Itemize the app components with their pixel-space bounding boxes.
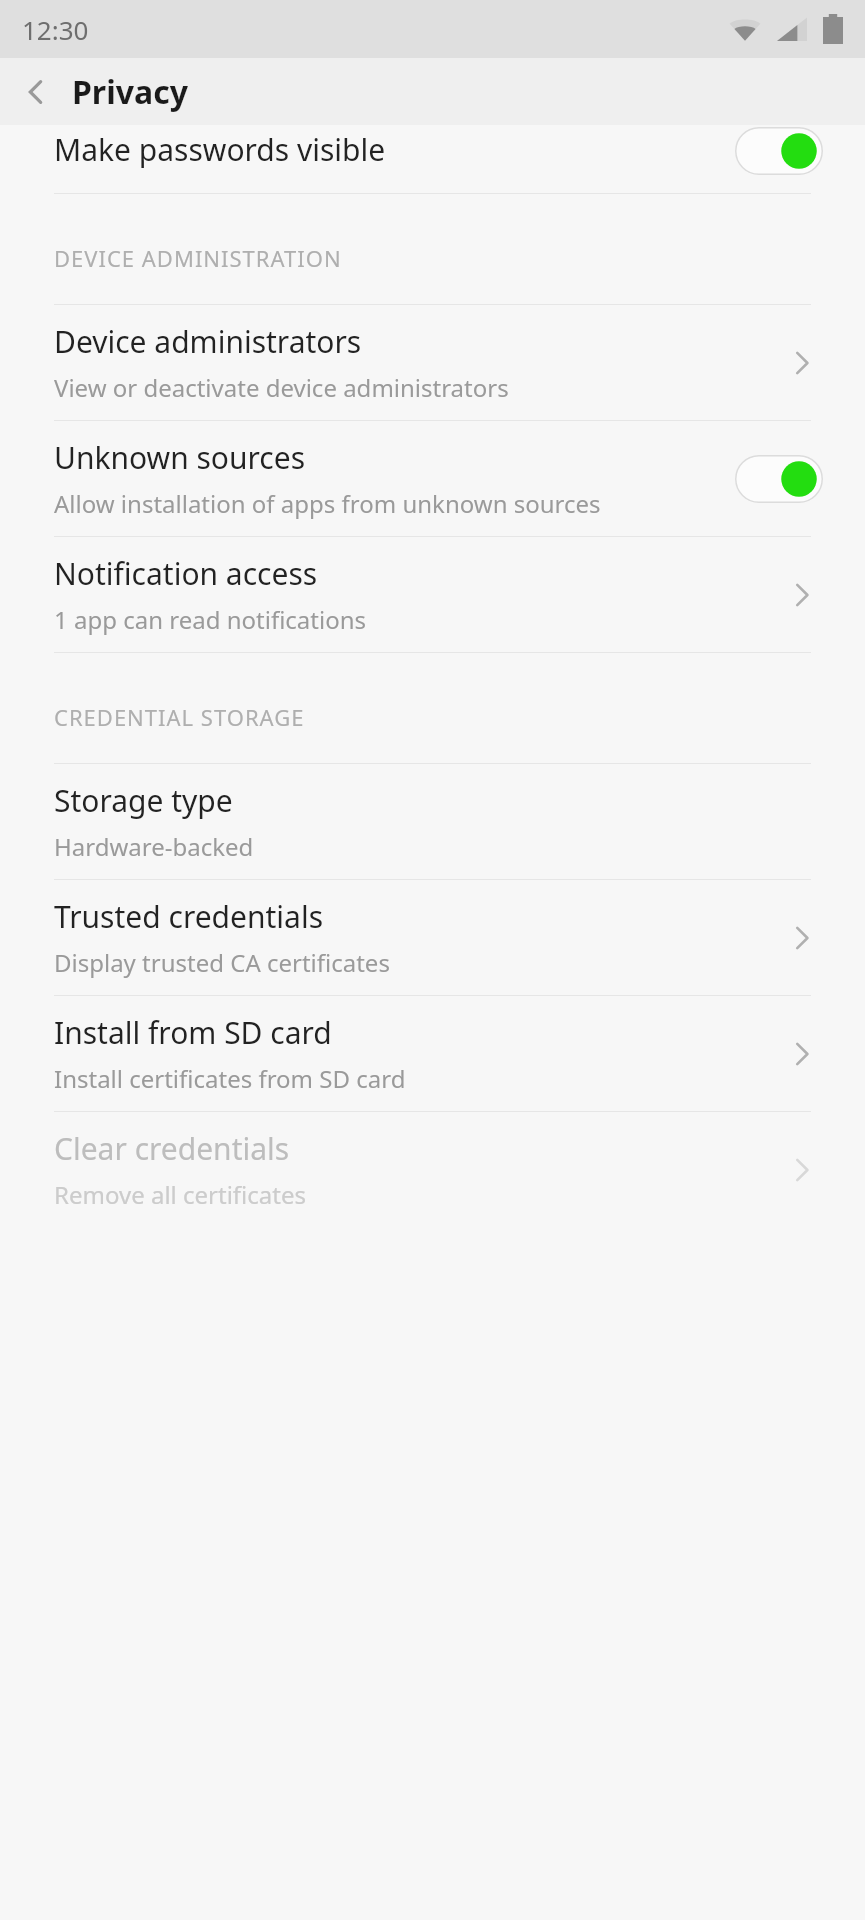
button[interactable]: Notification access <box>0 537 865 652</box>
staticText: Display trusted CA certificates <box>54 946 390 979</box>
button[interactable]: Back <box>0 58 72 125</box>
staticText: 1 app can read notifications <box>54 603 367 636</box>
button[interactable]: Device administrators <box>0 305 865 420</box>
staticText: Privacy <box>72 70 188 114</box>
other: Clear credentials <box>769 1137 835 1203</box>
other: Notification access <box>769 562 835 628</box>
button[interactable]: Storage type <box>0 764 865 879</box>
button[interactable]: Install from SD card <box>0 996 865 1111</box>
button[interactable]: Clear credentials <box>0 1112 865 1227</box>
staticText: Notification access <box>54 553 318 594</box>
staticText: CREDENTIAL STORAGE <box>54 702 305 732</box>
staticText: Unknown sources <box>54 437 306 478</box>
staticText: Install from SD card <box>54 1012 332 1053</box>
staticText: Hardware-backed <box>54 830 254 863</box>
staticText: Clear credentials <box>54 1128 290 1169</box>
staticText: Device administrators <box>54 321 362 362</box>
staticText: Trusted credentials <box>54 896 324 937</box>
staticText: Make passwords visible <box>54 129 386 170</box>
button[interactable]: Make passwords visible <box>0 125 865 193</box>
other: Device administrators <box>769 330 835 396</box>
other: Install from SD card <box>769 1021 835 1087</box>
button[interactable]: Trusted credentials <box>0 880 865 995</box>
button[interactable]: Unknown sources <box>0 421 865 536</box>
button[interactable]: Toggle <box>735 455 823 503</box>
staticText: Remove all certificates <box>54 1178 306 1211</box>
staticText: View or deactivate device administrators <box>54 371 509 404</box>
button[interactable]: Toggle <box>735 127 823 175</box>
staticText: 12:30 <box>22 12 89 47</box>
staticText: Allow installation of apps from unknown … <box>54 487 601 520</box>
staticText: Install certificates from SD card <box>54 1062 406 1095</box>
staticText: Storage type <box>54 780 233 821</box>
staticText: DEVICE ADMINISTRATION <box>54 243 342 273</box>
other: Trusted credentials <box>769 905 835 971</box>
